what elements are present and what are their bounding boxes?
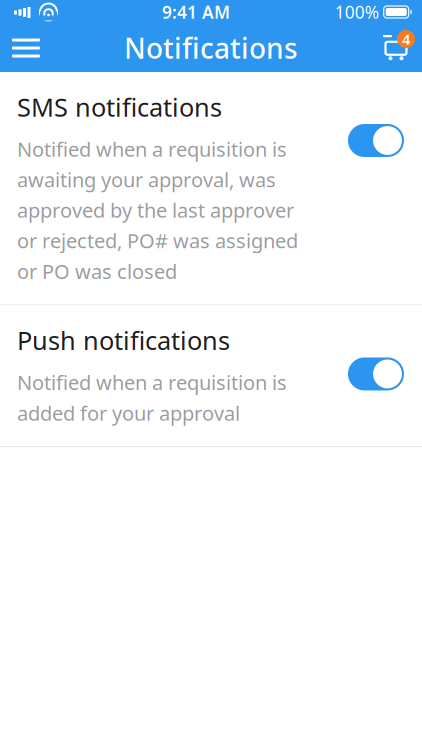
staticText: 9:41 AM — [162, 0, 230, 23]
staticText: Notifications — [124, 29, 298, 67]
staticText: Push notifications — [17, 323, 230, 357]
button[interactable]: Cart, 4 items — [370, 24, 422, 72]
button[interactable]: SMS notifications — [0, 72, 422, 304]
button[interactable]: Menu — [0, 24, 52, 72]
staticText: 100% — [335, 0, 379, 23]
staticText: Notified when a requisition is added for… — [17, 369, 287, 426]
staticText: 4 — [402, 29, 410, 49]
button[interactable]: Push notifications — [0, 305, 422, 446]
staticText: SMS notifications — [17, 90, 222, 124]
staticText: Notified when a requisition is awaiting … — [17, 136, 298, 284]
